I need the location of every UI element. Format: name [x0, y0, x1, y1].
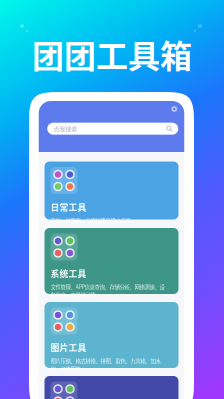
staticText: 点我搜索 — [53, 124, 77, 133]
button[interactable]: 图片工具 — [44, 302, 178, 368]
staticText: 文件管理、APP信息查询、存储分析、网络测速、设备信息、电量统计等 — [50, 283, 164, 299]
button[interactable]: 提取工具 — [44, 376, 178, 399]
button[interactable]: 日常工具 — [44, 161, 178, 219]
staticText: 日常工具 — [50, 200, 86, 213]
button[interactable]: 点我搜索 — [47, 123, 178, 135]
staticText: 团团工具箱 — [32, 31, 192, 77]
staticText: 日历、计算器、二维码等日常小工具 — [50, 216, 130, 224]
button[interactable]: 系统工具 — [44, 228, 178, 294]
staticText: 系统工具 — [50, 267, 86, 280]
button[interactable]: Settings — [171, 106, 178, 112]
staticText: 图片压缩、格式转换、拼图、取色、九宫格、加水印、证件照等 — [50, 357, 160, 373]
staticText: 图片工具 — [50, 341, 86, 354]
